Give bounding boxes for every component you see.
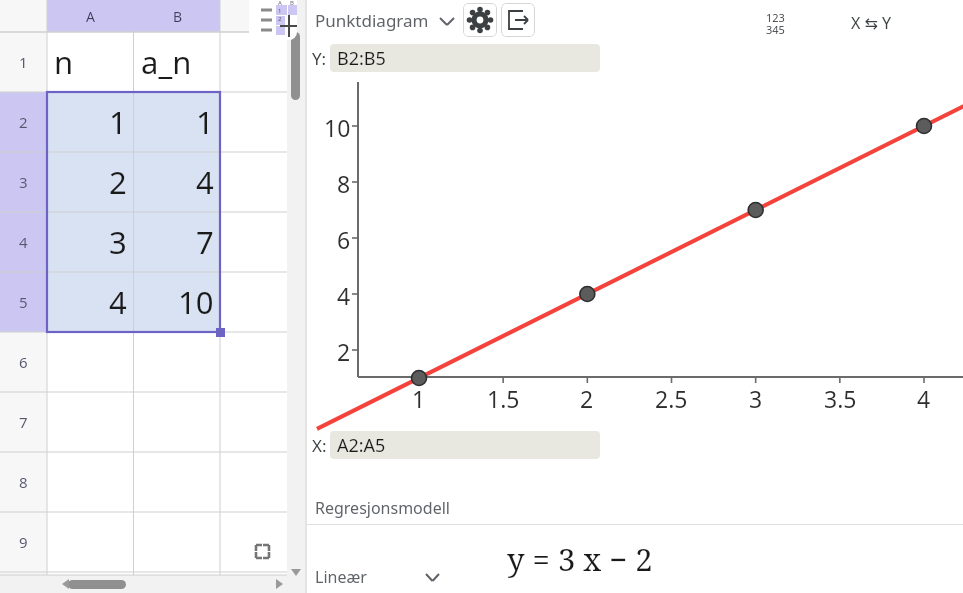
- button[interactable]: Punktdiagram: [315, 9, 455, 32]
- button[interactable]: 4: [54, 272, 127, 332]
- button[interactable]: Lineær: [315, 566, 440, 588]
- staticText: A: [86, 7, 95, 26]
- button[interactable]: 10: [141, 272, 214, 332]
- staticText: 123: [766, 10, 785, 25]
- staticText: X:: [312, 434, 327, 457]
- button[interactable]: 9: [0, 512, 47, 572]
- button[interactable]: A2:A5: [330, 431, 600, 459]
- staticText: Punktdiagram: [315, 9, 429, 32]
- staticText: 4: [917, 383, 931, 414]
- button[interactable]: 2: [54, 152, 127, 212]
- staticText: Y:: [312, 47, 327, 70]
- button[interactable]: B: [134, 0, 221, 32]
- staticText: A: [278, 0, 282, 7]
- staticText: 4: [19, 232, 28, 252]
- button[interactable]: 1: [54, 92, 127, 152]
- staticText: 3: [19, 172, 28, 192]
- staticText: 1: [109, 101, 127, 143]
- staticText: 4: [196, 161, 214, 203]
- staticText: A2:A5: [337, 433, 386, 458]
- staticText: 1: [278, 7, 282, 15]
- button[interactable]: 4: [141, 152, 214, 212]
- staticText: 1: [19, 52, 28, 72]
- staticText: Regresjonsmodell: [315, 497, 450, 519]
- staticText: y = 3 x − 2: [507, 538, 653, 580]
- staticText: 2: [109, 161, 127, 203]
- button[interactable]: Export: [501, 3, 535, 37]
- staticText: 4: [109, 281, 127, 323]
- staticText: B: [290, 0, 294, 7]
- button[interactable]: 7: [0, 392, 47, 452]
- staticText: 8: [19, 472, 28, 492]
- staticText: 345: [766, 22, 785, 37]
- button[interactable]: 5: [0, 272, 47, 332]
- staticText: 8: [337, 168, 351, 199]
- staticText: 9: [19, 532, 28, 552]
- button[interactable]: Create table: [249, 0, 297, 40]
- staticText: 2: [337, 336, 351, 367]
- button[interactable]: 7: [141, 212, 214, 272]
- button[interactable]: 3: [0, 152, 47, 212]
- staticText: B2:B5: [337, 46, 386, 71]
- staticText: 2: [278, 15, 282, 23]
- staticText: X ⇆ Y: [851, 12, 892, 34]
- staticText: 1.5: [487, 383, 520, 414]
- staticText: 3: [749, 383, 763, 414]
- staticText: n: [54, 41, 74, 83]
- staticText: 2: [19, 112, 28, 132]
- button[interactable]: 2: [0, 92, 47, 152]
- button[interactable]: 8: [0, 452, 47, 512]
- button[interactable]: Settings: [463, 3, 497, 37]
- button[interactable]: 1: [0, 32, 47, 92]
- staticText: 4: [337, 280, 351, 311]
- staticText: Lineær: [315, 566, 367, 588]
- button[interactable]: Fullscreen: [243, 532, 282, 571]
- staticText: B: [173, 7, 183, 26]
- staticText: 1: [196, 101, 214, 143]
- staticText: 6: [19, 352, 28, 372]
- staticText: 7: [19, 412, 28, 432]
- button[interactable]: A: [47, 0, 134, 32]
- button[interactable]: 1: [141, 92, 214, 152]
- button[interactable]: 4: [0, 212, 47, 272]
- staticText: 3.5: [824, 383, 857, 414]
- staticText: 2: [580, 383, 594, 414]
- staticText: 2.5: [655, 383, 688, 414]
- staticText: 7: [196, 221, 214, 263]
- staticText: 10: [324, 112, 351, 143]
- button[interactable]: 3: [54, 212, 127, 272]
- staticText: 10: [178, 281, 214, 323]
- staticText: a_n: [141, 41, 192, 83]
- button[interactable]: a_n: [141, 32, 214, 92]
- button[interactable]: 6: [0, 332, 47, 392]
- staticText: 5: [19, 292, 28, 312]
- staticText: 1: [412, 383, 426, 414]
- button[interactable]: B2:B5: [330, 44, 600, 72]
- button[interactable]: n: [54, 32, 127, 92]
- staticText: 6: [337, 224, 351, 255]
- staticText: 3: [109, 221, 127, 263]
